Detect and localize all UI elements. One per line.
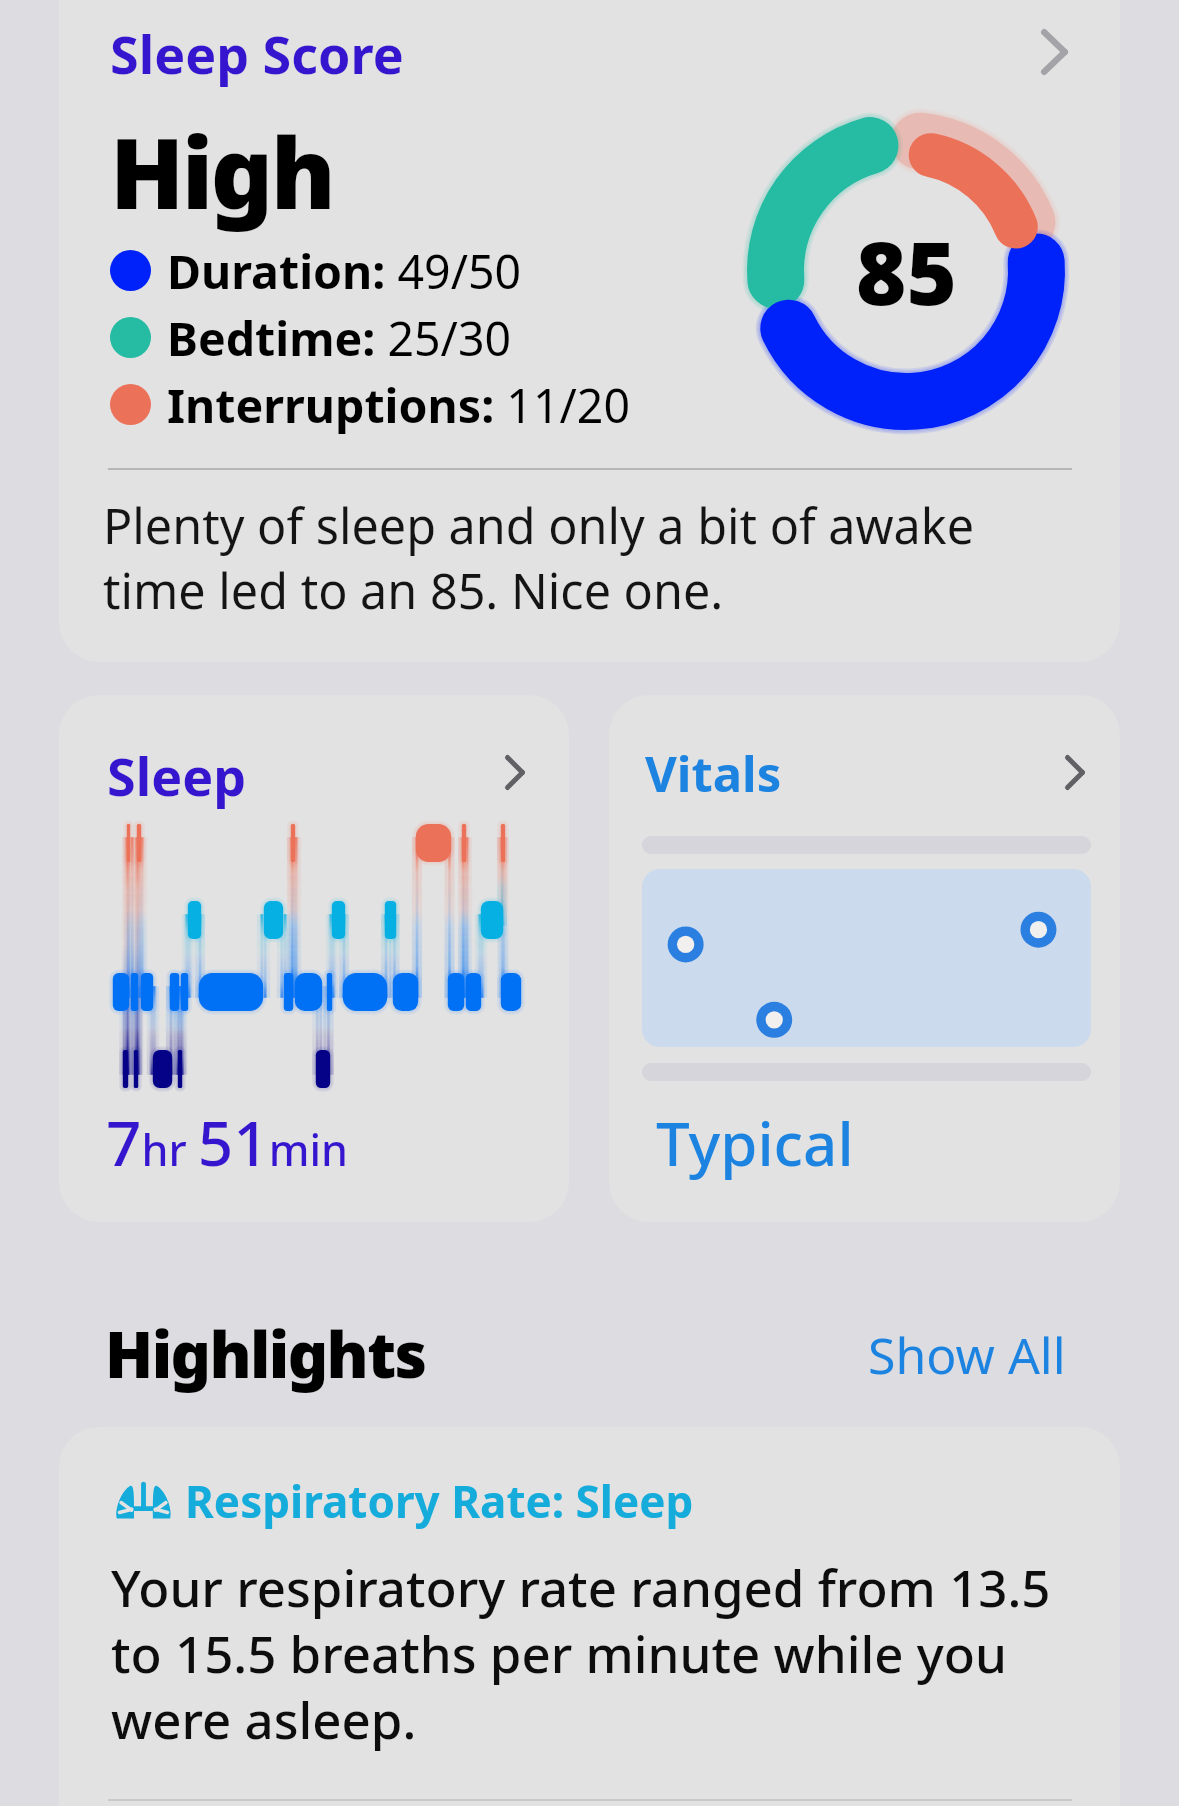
- staticText: Respiratory Rate: Sleep: [185, 1471, 694, 1531]
- staticText: Sleep: [107, 740, 247, 811]
- button[interactable]: Sleep Score: [59, 0, 1120, 662]
- staticText: Highlights: [105, 1311, 426, 1397]
- staticText: Typical: [656, 1102, 854, 1184]
- staticText: High: [110, 105, 334, 237]
- staticText: Your respiratory rate ranged from 13.5 t…: [111, 1552, 1074, 1754]
- button[interactable]: Vitals: [609, 695, 1120, 1222]
- staticText: Vitals: [645, 740, 782, 807]
- button[interactable]: Open Sleep Score details: [1034, 20, 1074, 84]
- staticText: Bedtime: 25/30: [167, 306, 512, 369]
- staticText: Duration: 49/50: [167, 239, 522, 302]
- button[interactable]: Open Vitals details: [1055, 750, 1095, 794]
- button[interactable]: Sleep: [59, 695, 569, 1222]
- button[interactable]: Open Sleep details: [495, 750, 535, 794]
- staticText: 85: [856, 213, 957, 330]
- staticText: Plenty of sleep and only a bit of awake …: [103, 492, 1038, 623]
- staticText: Interruptions: 11/20: [167, 373, 631, 436]
- staticText: 7hr 51min: [106, 1100, 349, 1184]
- button[interactable]: Show All: [868, 1321, 1066, 1389]
- staticText: Sleep Score: [110, 18, 404, 89]
- button[interactable]: Respiratory Rate: Sleep: [59, 1427, 1120, 1806]
- staticText: Show All: [868, 1321, 1066, 1389]
